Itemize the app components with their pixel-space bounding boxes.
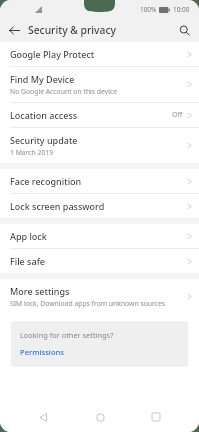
staticText: No Google Account on this device <box>10 87 118 96</box>
button[interactable]: Location access <box>0 103 199 127</box>
button[interactable]: Security update <box>0 128 199 163</box>
staticText: Location access <box>10 109 78 121</box>
staticText: Google Play Protect <box>10 48 95 60</box>
button[interactable]: More settings <box>0 279 199 314</box>
button[interactable]: Recents <box>143 404 169 430</box>
button[interactable]: Search <box>174 20 194 40</box>
button[interactable]: Lock screen password <box>0 194 199 218</box>
button[interactable]: Permissions <box>20 347 64 357</box>
staticText: Lock screen password <box>10 200 105 212</box>
staticText: Looking for other settings? <box>20 330 114 340</box>
staticText: SIM lock, Download apps from unknown sou… <box>10 299 165 308</box>
staticText: File safe <box>10 255 46 267</box>
button[interactable]: Home <box>87 404 113 430</box>
button[interactable]: Google Play Protect <box>0 42 199 66</box>
staticText: Find My Device <box>10 73 75 85</box>
button[interactable]: Find My Device <box>0 67 199 102</box>
staticText: 100% <box>140 5 157 14</box>
staticText: 10:00 <box>173 5 190 14</box>
button[interactable]: Face recognition <box>0 169 199 193</box>
button[interactable]: File safe <box>0 249 199 273</box>
staticText: 1 March 2019 <box>10 148 54 157</box>
staticText: Face recognition <box>10 175 82 187</box>
staticText: Off <box>172 110 183 120</box>
button[interactable]: App lock <box>0 224 199 248</box>
button[interactable]: Back <box>4 20 24 40</box>
staticText: Security update <box>10 134 78 146</box>
staticText: App lock <box>10 230 47 242</box>
staticText: Permissions <box>20 347 64 357</box>
staticText: Security & privacy <box>28 23 116 37</box>
button[interactable]: Back <box>30 404 56 430</box>
staticText: More settings <box>10 285 70 297</box>
